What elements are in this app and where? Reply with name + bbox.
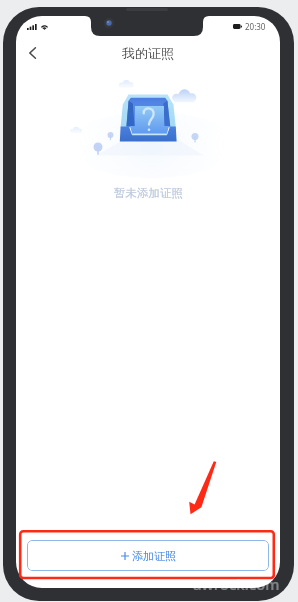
staticText: 添加证照 bbox=[132, 549, 176, 563]
button[interactable]: 添加证照 bbox=[27, 540, 269, 571]
button[interactable]: Back bbox=[19, 40, 45, 66]
staticText: 我的证照 bbox=[122, 45, 174, 61]
staticText: 20:30 bbox=[245, 21, 266, 32]
staticText: awrock.com bbox=[193, 574, 280, 594]
staticText: 暂未添加证照 bbox=[114, 186, 183, 200]
